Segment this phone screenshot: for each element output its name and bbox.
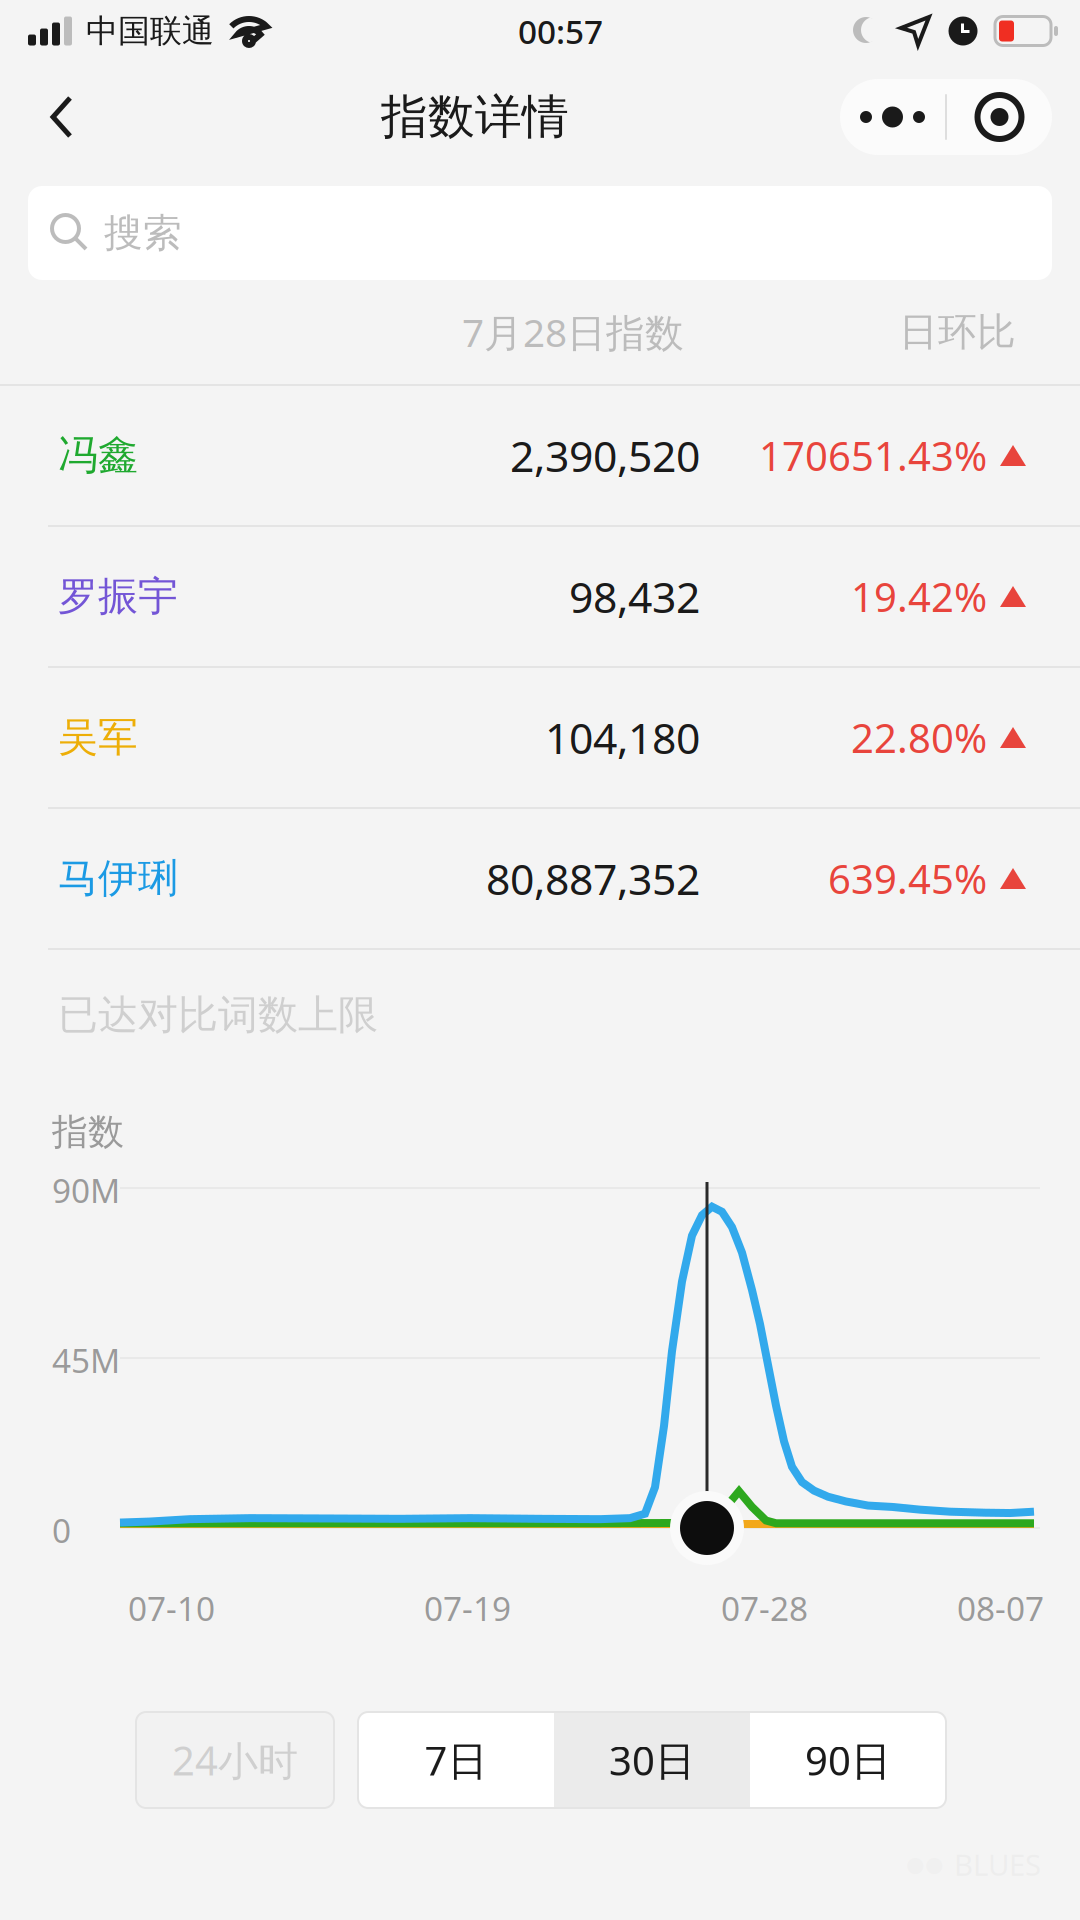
button[interactable]: Close mini program (947, 79, 1052, 155)
staticText: 104,180 (545, 709, 700, 766)
staticText: 0 (52, 1508, 71, 1552)
button[interactable]: 罗振宇 (0, 527, 1080, 666)
button[interactable]: 冯鑫 (0, 386, 1080, 525)
staticText: 00:57 (518, 9, 603, 53)
staticText: 7日 (424, 1733, 487, 1786)
button[interactable]: 搜索 (28, 186, 1052, 280)
staticText: 已达对比词数上限 (58, 990, 378, 1039)
staticText: 冯鑫 (58, 431, 138, 480)
button[interactable]: 90日 (750, 1712, 946, 1808)
staticText: 罗振宇 (58, 572, 178, 621)
staticText: 2,390,520 (510, 427, 700, 484)
button[interactable]: More options (840, 79, 945, 155)
staticText: 80,887,352 (486, 850, 700, 907)
staticText: 指数 (52, 1110, 124, 1154)
staticText: 指数详情 (381, 88, 569, 146)
staticText: 98,432 (569, 568, 700, 625)
staticText: 日环比 (899, 308, 1016, 356)
staticText: 45M (52, 1338, 120, 1382)
button[interactable]: Back (14, 73, 110, 161)
staticText: 19.42% (851, 570, 987, 623)
staticText: 马伊琍 (58, 854, 178, 903)
staticText: 07-10 (128, 1586, 215, 1630)
button[interactable]: 7日 (358, 1712, 554, 1808)
button[interactable]: 吴军 (0, 668, 1080, 807)
staticText: 24小时 (172, 1733, 298, 1786)
staticText: 7月28日指数 (462, 306, 684, 358)
staticText: 07-28 (721, 1586, 808, 1630)
staticText: 22.80% (851, 711, 987, 764)
staticText: 30日 (609, 1733, 695, 1786)
staticText: 90日 (805, 1733, 891, 1786)
staticText: 搜索 (104, 209, 182, 257)
staticText: 07-19 (424, 1586, 511, 1630)
button[interactable]: 24小时 (136, 1712, 334, 1808)
staticText: 08-07 (957, 1586, 1044, 1630)
button[interactable]: 30日 (554, 1712, 750, 1808)
button[interactable]: 马伊琍 (0, 809, 1080, 948)
staticText: 中国联通 (86, 11, 214, 51)
staticText: 吴军 (58, 713, 138, 762)
staticText: 639.45% (828, 852, 987, 905)
staticText: 90M (52, 1168, 120, 1212)
staticText: 170651.43% (759, 429, 987, 482)
